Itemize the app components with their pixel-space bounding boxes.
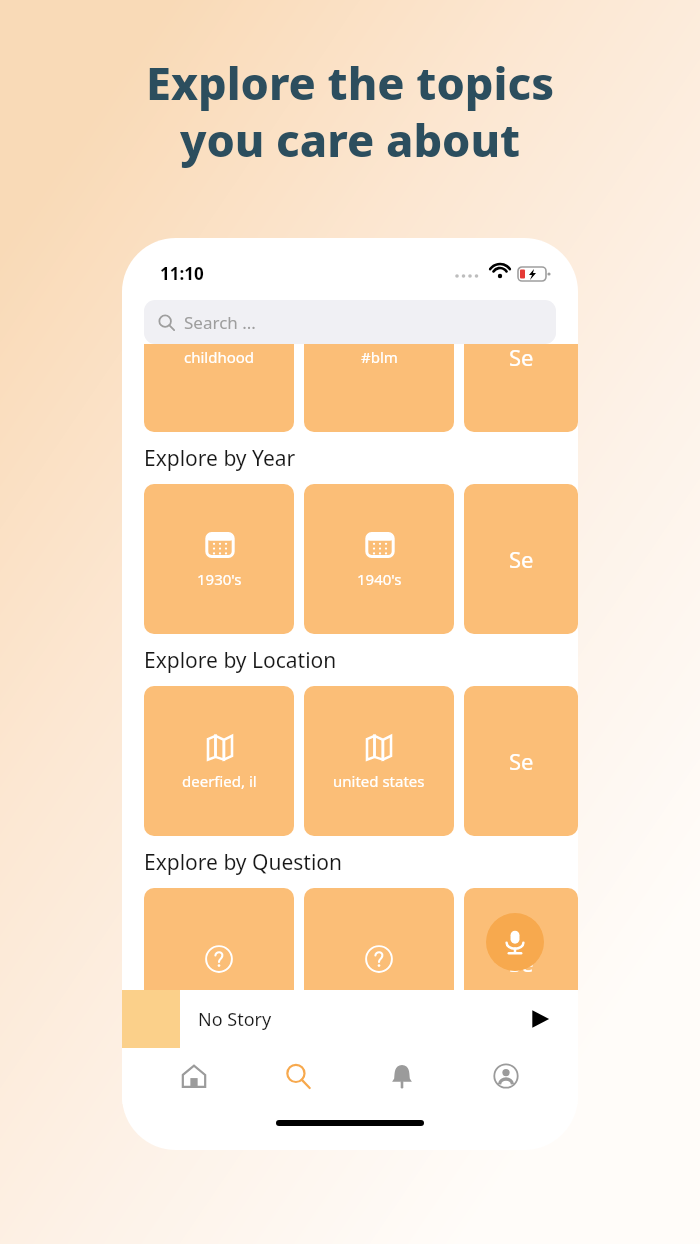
staticText: Explore the topics you care about: [0, 52, 700, 170]
staticText: 1930's: [197, 569, 242, 589]
staticText: 1940's: [357, 569, 402, 589]
button[interactable]: Home: [162, 1048, 226, 1104]
button[interactable]: 1930's: [144, 484, 294, 634]
button[interactable]: [304, 888, 454, 1038]
staticText: childhood: [184, 347, 255, 367]
button[interactable]: Record story: [486, 913, 544, 971]
button[interactable]: deerfied, il: [144, 686, 294, 836]
button[interactable]: #blm: [304, 344, 454, 432]
staticText: No Story: [198, 1007, 272, 1032]
staticText: Se: [509, 544, 534, 574]
button[interactable]: 1940's: [304, 484, 454, 634]
button[interactable]: Notifications: [370, 1048, 434, 1104]
staticText: #blm: [361, 347, 398, 367]
button[interactable]: No Story: [122, 990, 578, 1048]
button[interactable]: Search ...: [144, 300, 556, 344]
button[interactable]: Se: [464, 344, 578, 432]
staticText: deerfied, il: [182, 771, 257, 791]
staticText: Se: [509, 344, 534, 372]
staticText: 11:10: [160, 262, 204, 285]
staticText: Se: [509, 948, 534, 978]
button[interactable]: Play: [528, 1007, 552, 1031]
staticText: Explore by Year: [144, 444, 296, 473]
staticText: Explore by Question: [144, 848, 343, 877]
button[interactable]: Se: [464, 484, 578, 634]
staticText: united states: [333, 771, 425, 791]
button[interactable]: Search: [266, 1048, 330, 1104]
button[interactable]: Profile: [474, 1048, 538, 1104]
staticText: Explore by Location: [144, 646, 337, 675]
button[interactable]: [144, 888, 294, 1038]
staticText: Search ...: [184, 311, 256, 334]
button[interactable]: Se: [464, 686, 578, 836]
button[interactable]: Se: [464, 888, 578, 1038]
button[interactable]: childhood: [144, 344, 294, 432]
staticText: Se: [509, 746, 534, 776]
button[interactable]: united states: [304, 686, 454, 836]
